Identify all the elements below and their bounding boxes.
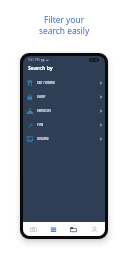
button[interactable]: Folder <box>63 222 84 236</box>
button[interactable]: List <box>43 222 63 236</box>
button[interactable]: EAT / DRINK <box>23 76 105 90</box>
button[interactable]: ONLINE <box>23 132 105 146</box>
staticText: EAT / DRINK <box>37 81 55 85</box>
staticText: search easily <box>39 25 90 36</box>
staticText: Filter your <box>44 14 85 25</box>
staticText: ONLINE <box>37 137 49 141</box>
button[interactable]: SERVICES <box>23 104 105 118</box>
staticText: SERVICES <box>37 109 51 113</box>
staticText: SHOP <box>37 95 46 99</box>
button[interactable]: Profile <box>84 222 105 236</box>
button[interactable]: FUN <box>23 118 105 132</box>
staticText: FUN <box>37 123 44 127</box>
staticText: Search by <box>28 64 53 71</box>
button[interactable]: SHOP <box>23 90 105 104</box>
staticText: 9:41 PM ▮▮ ▰ <box>28 58 49 62</box>
button[interactable]: Camera <box>23 222 43 236</box>
